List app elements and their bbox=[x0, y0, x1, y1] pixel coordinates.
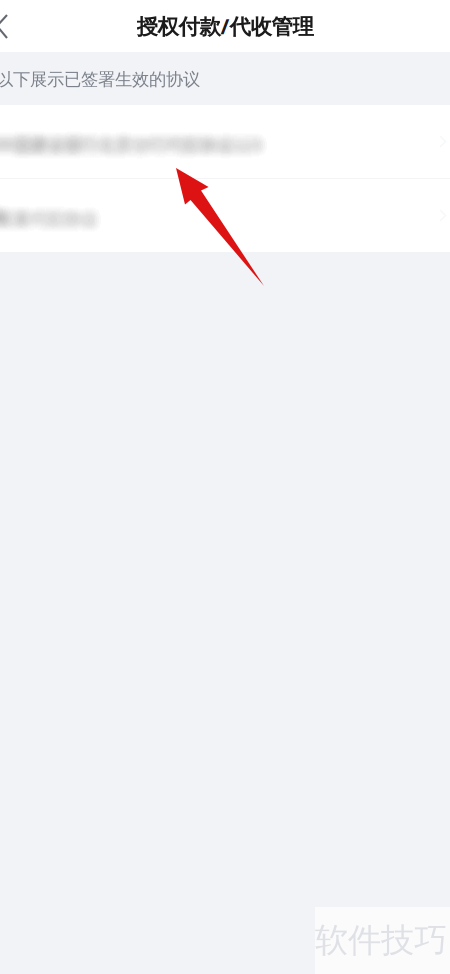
button[interactable]: 查看协议详情 bbox=[0, 179, 450, 252]
button[interactable]: 查看协议详情 bbox=[0, 105, 450, 178]
staticText: 以下展示已签署生效的协议 bbox=[0, 69, 200, 90]
staticText: 软件技巧 bbox=[315, 920, 447, 961]
button[interactable]: 返回 bbox=[0, 0, 40, 52]
staticText: 授权付款/代收管理 bbox=[136, 12, 313, 40]
